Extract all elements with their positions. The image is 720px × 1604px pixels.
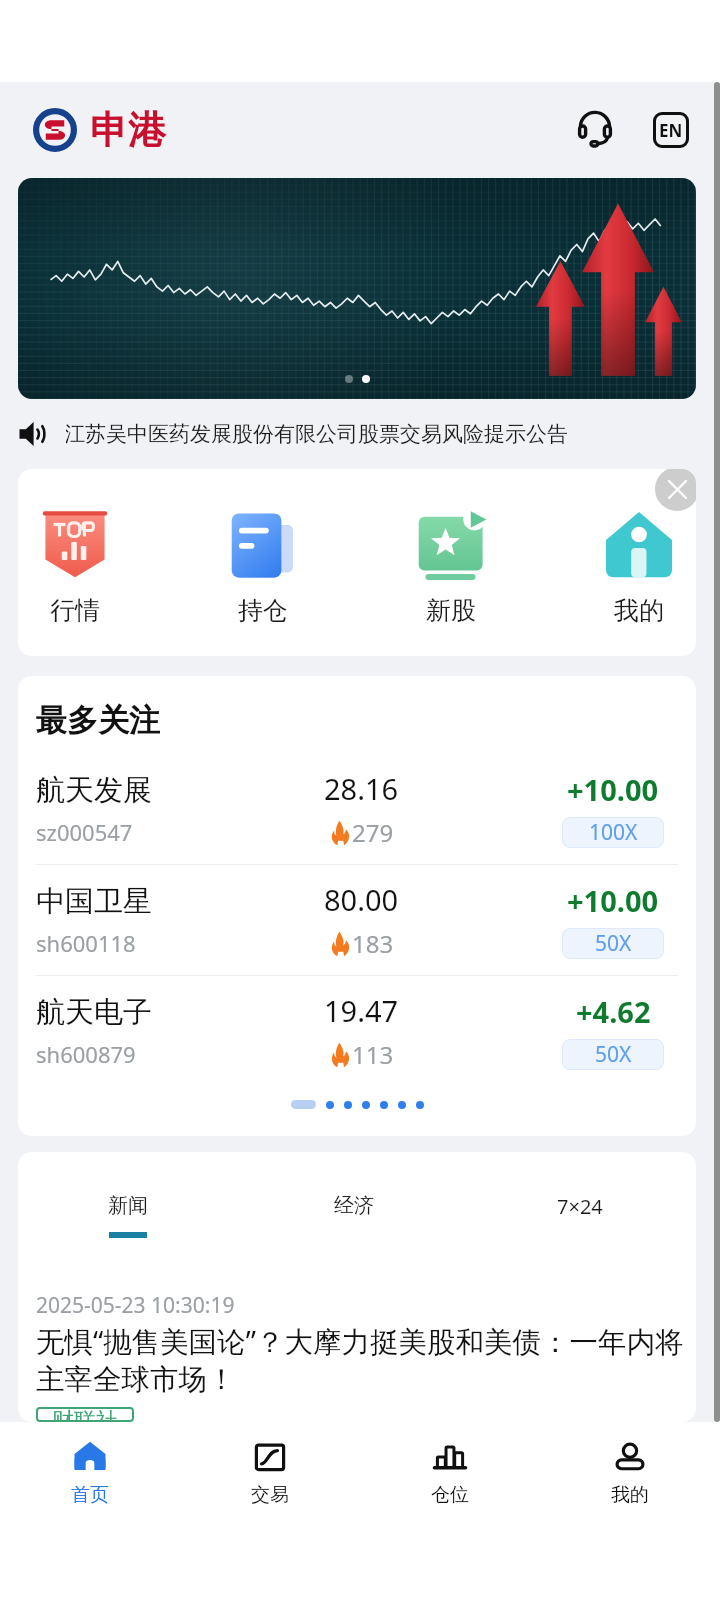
staticText: 江苏吴中医药发展股份有限公司股票交易风险提示公告 <box>66 421 568 447</box>
staticText: 新股 <box>426 595 476 626</box>
staticText: 28.16 <box>324 769 399 808</box>
button[interactable]: 持仓 <box>206 511 320 626</box>
staticText: +10.00 <box>567 770 659 809</box>
staticText: sh600118 <box>36 928 136 958</box>
staticText: 仓位 <box>431 1483 469 1507</box>
button[interactable]: 交易 <box>180 1439 360 1507</box>
button[interactable]: 江苏吴中医药发展股份有限公司股票交易风险提示公告 <box>18 399 696 469</box>
button[interactable]: 航天电子 <box>18 976 696 1086</box>
staticText: 100X <box>589 818 638 847</box>
button[interactable]: 财联社 <box>36 1407 134 1422</box>
staticText: 航天电子 <box>36 994 152 1031</box>
staticText: 行情 <box>50 595 100 626</box>
staticText: 最多关注 <box>36 701 160 740</box>
button[interactable]: 50X <box>562 928 664 959</box>
button[interactable]: 行情 <box>18 511 132 626</box>
staticText: 50X <box>595 929 632 958</box>
staticText: +10.00 <box>567 881 659 920</box>
staticText: EN <box>659 119 683 142</box>
button[interactable]: Close quick actions <box>655 469 696 511</box>
button[interactable]: Customer service <box>569 104 621 156</box>
button[interactable]: 仓位 <box>360 1439 540 1507</box>
button[interactable]: 新股 <box>394 511 508 626</box>
staticText: 航天发展 <box>36 772 152 809</box>
staticText: 183 <box>352 927 394 960</box>
button[interactable]: 100X <box>562 817 664 848</box>
staticText: +4.62 <box>576 992 651 1031</box>
staticText: 7×24 <box>557 1193 603 1220</box>
staticText: 交易 <box>251 1483 289 1507</box>
staticText: 经济 <box>334 1193 374 1218</box>
button[interactable]: 7×24 <box>467 1193 693 1234</box>
staticText: 我的 <box>611 1483 649 1507</box>
staticText: 113 <box>352 1038 394 1071</box>
staticText: 持仓 <box>238 595 288 626</box>
staticText: 2025-05-23 10:30:19 <box>36 1291 235 1320</box>
staticText: 中国卫星 <box>36 883 152 920</box>
staticText: sh600879 <box>36 1039 136 1069</box>
button[interactable]: 新闻 <box>18 1193 241 1238</box>
button[interactable]: 经济 <box>241 1193 467 1232</box>
staticText: 申港 <box>90 106 166 154</box>
staticText: sz000547 <box>36 817 133 847</box>
button[interactable]: 50X <box>562 1039 664 1070</box>
staticText: 我的 <box>614 595 664 626</box>
staticText: 无惧“抛售美国论”？大摩力挺美股和美债：一年内将主宰全球市场！ <box>36 1322 694 1397</box>
button[interactable]: 我的 <box>540 1439 720 1507</box>
staticText: 首页 <box>71 1483 109 1507</box>
staticText: 279 <box>352 816 394 849</box>
button[interactable] <box>18 178 696 399</box>
staticText: 80.00 <box>324 880 399 919</box>
staticText: 19.47 <box>324 991 399 1030</box>
button[interactable]: 中国卫星 <box>18 865 696 975</box>
button[interactable]: 我的 <box>582 511 696 626</box>
staticText: 50X <box>595 1040 632 1069</box>
button[interactable]: 航天发展 <box>18 754 696 864</box>
button[interactable]: 首页 <box>0 1439 180 1507</box>
staticText: 新闻 <box>108 1193 148 1218</box>
staticText: 财联社 <box>52 1407 118 1422</box>
button[interactable]: Switch language to English <box>645 104 697 156</box>
